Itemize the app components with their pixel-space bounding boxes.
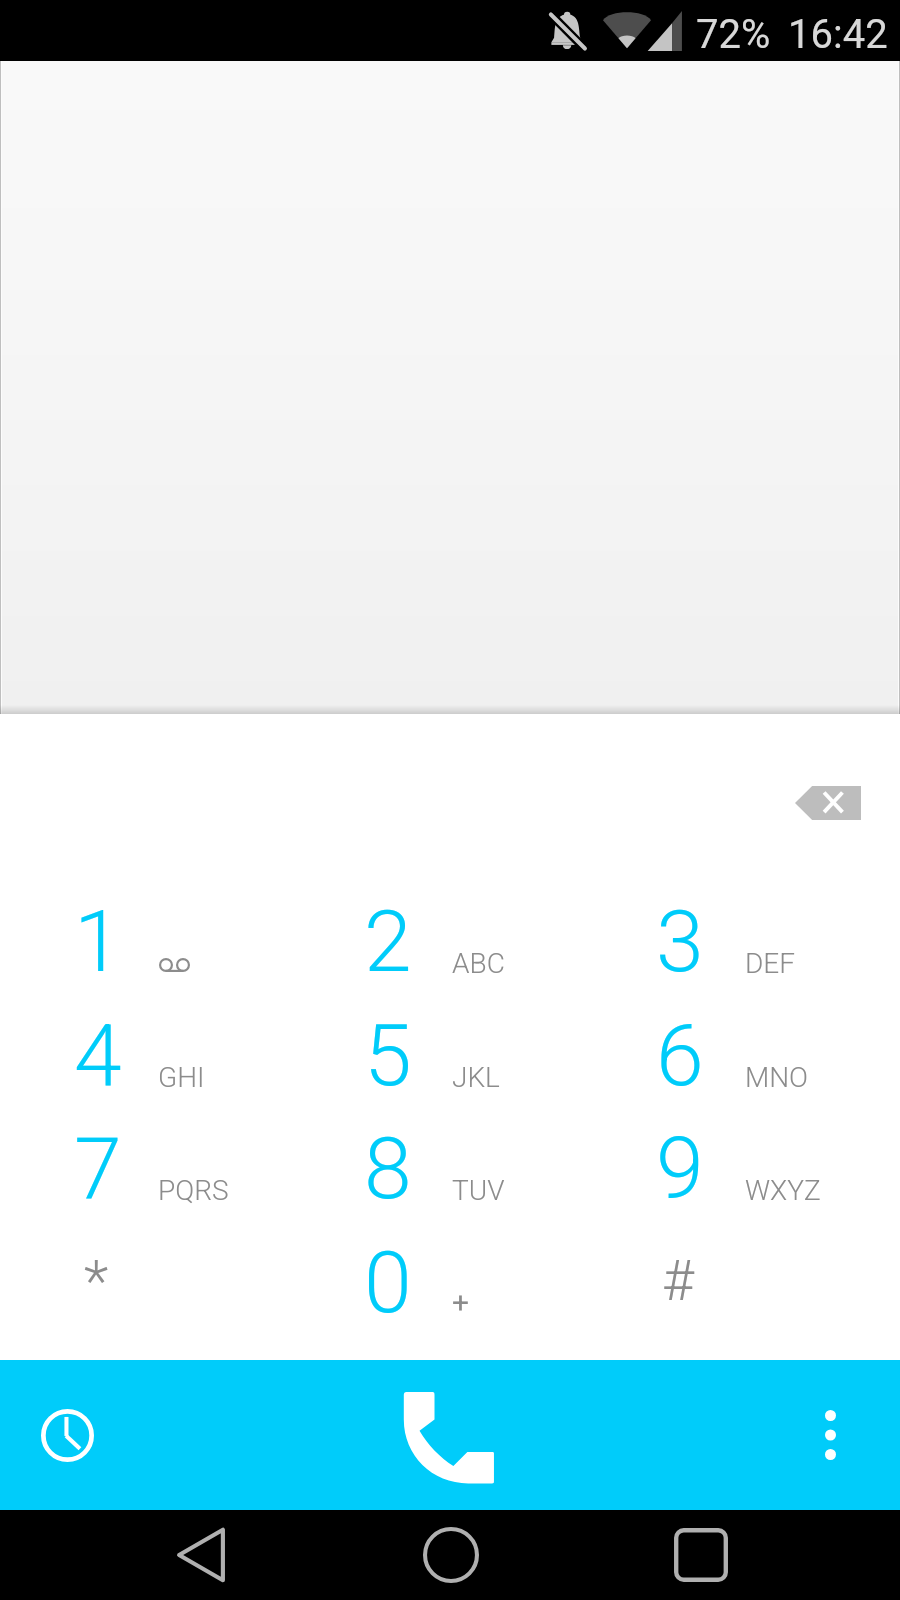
button[interactable] [600,989,900,1102]
button[interactable]: More options [780,1385,880,1485]
button[interactable]: Home [401,1510,501,1600]
staticText: 5 [364,1005,412,1106]
button[interactable] [300,875,600,988]
staticText: ABC [452,947,505,980]
staticText: DEF [745,947,796,980]
button[interactable] [0,989,300,1102]
staticText: GHI [158,1061,205,1094]
button[interactable]: Back [151,1510,251,1600]
button[interactable]: Recent apps [651,1510,751,1600]
staticText: MNO [745,1061,809,1094]
staticText: # [662,1249,694,1313]
staticText: 16:42 [788,11,888,58]
button[interactable]: Backspace [795,786,861,820]
button[interactable] [0,1102,300,1215]
button[interactable] [300,1102,600,1215]
staticText: WXYZ [745,1174,821,1207]
staticText: JKL [452,1061,500,1094]
staticText: 9 [656,1118,704,1219]
staticText: 6 [656,1005,704,1106]
staticText: 0 [364,1232,412,1333]
button[interactable] [600,1216,900,1329]
button[interactable] [300,1216,600,1329]
staticText: 2 [364,891,412,992]
staticText: 4 [74,1005,122,1106]
button[interactable] [0,1216,300,1329]
staticText: 8 [364,1118,412,1219]
staticText: TUV [452,1174,505,1207]
button[interactable] [300,989,600,1102]
staticText: 72% [696,11,771,58]
button[interactable]: Call [380,1370,520,1500]
button[interactable] [600,875,900,988]
button[interactable] [600,1102,900,1215]
staticText: 7 [74,1118,122,1219]
staticText: 1 [74,891,122,992]
button[interactable] [0,875,300,988]
staticText: 3 [656,891,704,992]
button[interactable]: Call history [17,1383,117,1483]
staticText: + [452,1285,470,1320]
staticText: PQRS [158,1174,229,1207]
staticText: * [84,1248,109,1315]
